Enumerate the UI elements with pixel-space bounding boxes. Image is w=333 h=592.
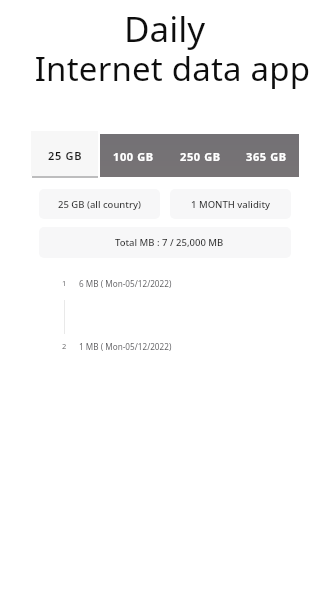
button[interactable]: 1 MONTH validity: [170, 189, 291, 219]
staticText: 250 GB: [180, 149, 221, 164]
staticText: 1 MB ( Mon-05/12/2022): [79, 341, 172, 352]
staticText: 365 GB: [246, 149, 287, 164]
button[interactable]: 365 GB: [233, 134, 299, 177]
staticText: 1 MONTH validity: [191, 198, 271, 211]
staticText: 100 GB: [113, 149, 154, 164]
staticText: 25 GB (all country): [58, 198, 141, 211]
staticText: 1: [62, 278, 67, 288]
button[interactable]: 250 GB: [167, 134, 233, 177]
button[interactable]: 25 GB: [31, 131, 98, 176]
staticText: Daily: [0, 5, 331, 53]
button[interactable]: 100 GB: [100, 134, 167, 177]
staticText: 6 MB ( Mon-05/12/2022): [79, 278, 172, 289]
staticText: Internet data app: [6, 46, 333, 91]
button[interactable]: 25 GB (all country): [39, 189, 160, 219]
button[interactable]: Total MB : 7 / 25,000 MB: [39, 227, 291, 258]
staticText: 25 GB: [48, 148, 83, 163]
staticText: Total MB : 7 / 25,000 MB: [115, 236, 224, 249]
staticText: 2: [62, 341, 67, 351]
